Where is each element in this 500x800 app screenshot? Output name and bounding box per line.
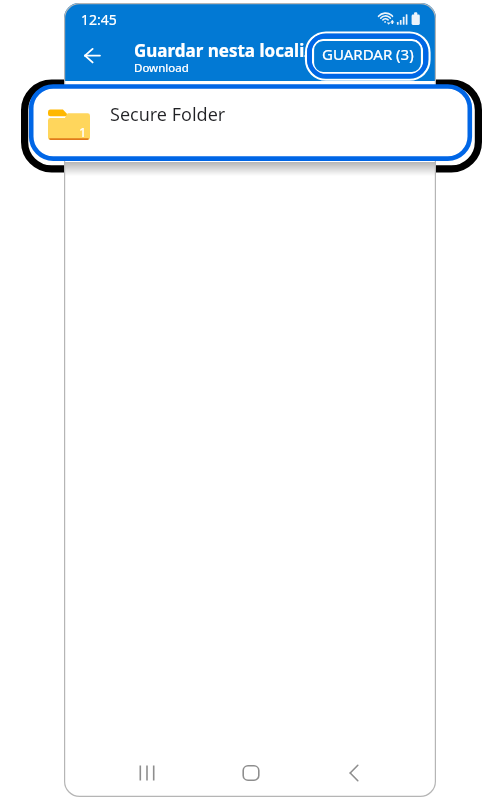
button[interactable]: 1 (31, 87, 470, 159)
staticText: GUARDAR (3) (322, 44, 414, 64)
staticText: 12:45 (81, 10, 117, 29)
staticText: 1 (79, 123, 87, 141)
staticText: Download (134, 60, 189, 76)
button[interactable]: GUARDAR (3) (312, 39, 423, 74)
staticText: Guardar nesta localizac (134, 39, 305, 61)
button[interactable]: Home (227, 749, 275, 797)
button[interactable]: Back (330, 749, 378, 797)
button[interactable] (64, 81, 436, 162)
button[interactable]: Back (70, 34, 114, 78)
button[interactable]: Recent apps (123, 749, 171, 797)
staticText: Secure Folder (110, 102, 226, 127)
